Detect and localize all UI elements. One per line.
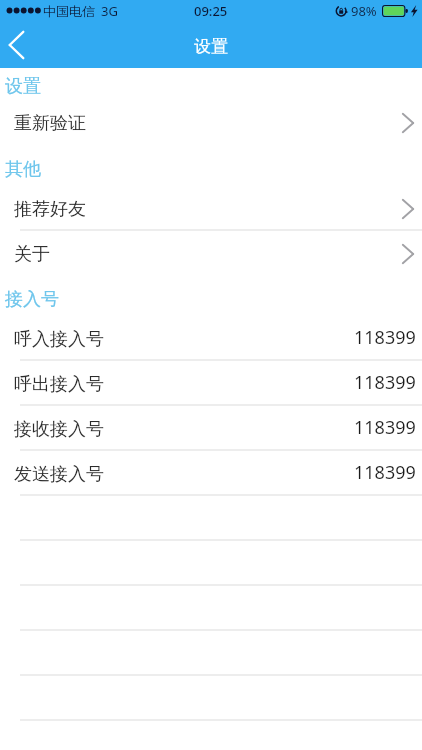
button[interactable]: 重新验证 — [0, 98, 422, 143]
staticText: 其他 — [5, 158, 41, 181]
button[interactable]: 推荐好友 — [0, 184, 422, 229]
staticText: 118399 — [354, 460, 416, 485]
staticText: 中国电信 — [43, 3, 95, 19]
staticText: 设置 — [5, 75, 41, 98]
other: Open 推荐好友 — [398, 198, 418, 220]
staticText: 09:25 — [194, 2, 228, 20]
staticText: 118399 — [354, 415, 416, 440]
button[interactable]: Back — [2, 22, 44, 68]
button[interactable]: 接收接入号 — [0, 404, 422, 449]
button[interactable]: 关于 — [0, 229, 422, 274]
button[interactable]: 发送接入号 — [0, 449, 422, 494]
staticText: 推荐好友 — [14, 198, 86, 221]
staticText: 接收接入号 — [14, 418, 104, 441]
other: Open 重新验证 — [398, 112, 418, 134]
staticText: 98% — [351, 2, 377, 20]
staticText: 发送接入号 — [14, 463, 104, 486]
staticText: 接入号 — [5, 288, 59, 311]
staticText: 3G — [101, 2, 118, 20]
other: Open 关于 — [398, 243, 418, 265]
staticText: 呼入接入号 — [14, 328, 104, 351]
staticText: 118399 — [354, 370, 416, 395]
staticText: 118399 — [354, 325, 416, 350]
staticText: 重新验证 — [14, 112, 86, 135]
staticText: 设置 — [194, 36, 228, 57]
staticText: 关于 — [14, 243, 50, 266]
staticText: 呼出接入号 — [14, 373, 104, 396]
button[interactable]: 呼出接入号 — [0, 359, 422, 404]
button[interactable]: 呼入接入号 — [0, 314, 422, 359]
